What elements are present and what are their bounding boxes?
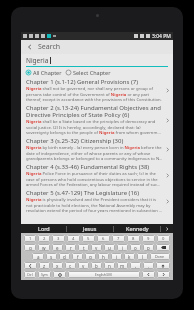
- button[interactable]: 1: [24, 235, 36, 242]
- staticText: r: [70, 245, 72, 251]
- button[interactable]: 9: [142, 235, 155, 242]
- staticText: Kennedy: [126, 225, 149, 232]
- button[interactable]: l: [137, 253, 148, 260]
- button[interactable]: b: [91, 262, 102, 269]
- button[interactable]: j: [111, 253, 122, 260]
- button[interactable]: e: [52, 244, 63, 251]
- button[interactable]: f: [72, 253, 83, 260]
- button[interactable]: v: [78, 262, 89, 269]
- button[interactable]: w: [38, 244, 50, 251]
- button[interactable]: [142, 271, 155, 278]
- button[interactable]: g: [85, 253, 96, 260]
- button[interactable]: 8: [127, 235, 140, 242]
- button[interactable]: t: [78, 244, 89, 251]
- other: Open chapter: [163, 145, 171, 153]
- button[interactable]: p: [143, 244, 154, 251]
- button[interactable]: [24, 262, 37, 269]
- staticText: .: [148, 263, 150, 269]
- staticText: g: [89, 254, 92, 260]
- staticText: 1: [29, 236, 32, 242]
- button[interactable]: q: [24, 244, 36, 251]
- button[interactable]: r: [65, 244, 76, 251]
- button[interactable]: z: [39, 262, 50, 269]
- other: Open chapter: [163, 197, 171, 205]
- staticText: Chapter 4 (s.33-46) Fundamental Rights (…: [26, 163, 150, 171]
- button[interactable]: Lord: [21, 224, 66, 233]
- button[interactable]: Kennedy: [114, 224, 160, 233]
- staticText: Done: [155, 254, 165, 259]
- button[interactable]: o: [130, 244, 141, 251]
- staticText: e: [56, 245, 59, 251]
- button[interactable]: i: [117, 244, 128, 251]
- button[interactable]: Chapter 4 (s.33-46) Fundamental Rights (…: [26, 162, 171, 188]
- button[interactable]: 6: [97, 235, 110, 242]
- staticText: English(UK): [95, 273, 113, 277]
- button[interactable]: [53, 271, 66, 278]
- other: Open chapter: [163, 171, 171, 179]
- staticText: a: [37, 254, 40, 260]
- button[interactable]: Jesus: [67, 224, 113, 233]
- staticText: c: [69, 263, 72, 269]
- button[interactable]: Back: [25, 42, 35, 52]
- button[interactable]: Chapter 2 (s.13-24) Fundamental Objectiv…: [26, 103, 171, 136]
- button[interactable]: s: [46, 253, 57, 260]
- button[interactable]: More suggestions: [161, 224, 173, 233]
- button[interactable]: [156, 244, 170, 251]
- button[interactable]: m: [117, 262, 128, 269]
- staticText: z: [43, 263, 46, 269]
- button[interactable]: x: [52, 262, 63, 269]
- button[interactable]: English(UK): [68, 271, 140, 278]
- button[interactable]: [156, 262, 170, 269]
- button[interactable]: 3: [52, 235, 65, 242]
- staticText: ,: [135, 263, 137, 269]
- button[interactable]: All Chapter: [26, 69, 62, 76]
- button[interactable]: Chapter 5 (s.47-129) The Legislature (16…: [26, 188, 171, 214]
- button[interactable]: y: [91, 244, 102, 251]
- staticText: n: [108, 263, 111, 269]
- staticText: Jesus: [83, 225, 97, 232]
- staticText: Chapter 1 (s.1-12) General Provisions (7…: [26, 78, 139, 86]
- staticText: Nigeria: [26, 56, 49, 65]
- staticText: u: [108, 245, 111, 251]
- button[interactable]: 5: [82, 235, 95, 242]
- staticText: s: [50, 254, 53, 260]
- button[interactable]: Sym: [38, 271, 51, 278]
- button[interactable]: Back: [21, 40, 173, 54]
- staticText: 0: [162, 236, 165, 242]
- staticText: Chapter 2 (s.13-24) Fundamental Objectiv…: [26, 104, 163, 119]
- staticText: t: [83, 245, 85, 251]
- button[interactable]: 7: [112, 235, 125, 242]
- button[interactable]: c: [65, 262, 76, 269]
- staticText: y: [95, 245, 98, 251]
- button[interactable]: [157, 271, 170, 278]
- staticText: o: [134, 245, 137, 251]
- button[interactable]: 4: [67, 235, 80, 242]
- button[interactable]: 0: [157, 235, 170, 242]
- button[interactable]: .: [143, 262, 154, 269]
- button[interactable]: ,: [130, 262, 141, 269]
- button[interactable]: u: [104, 244, 115, 251]
- button[interactable]: Done: [150, 253, 170, 260]
- staticText: k: [128, 254, 131, 260]
- button[interactable]: Ctrl: [24, 271, 36, 278]
- button[interactable]: d: [59, 253, 70, 260]
- staticText: 6: [102, 236, 105, 242]
- staticText: j: [116, 254, 118, 260]
- staticText: q: [29, 245, 32, 251]
- button[interactable]: 2: [38, 235, 50, 242]
- button[interactable]: Chapter 1 (s.1-12) General Provisions (7…: [26, 77, 171, 103]
- staticText: l: [142, 254, 144, 260]
- staticText: 2: [43, 236, 46, 242]
- button[interactable]: Chapter 3 (s.25-32) Citizenship (30): [26, 136, 171, 162]
- staticText: v: [82, 263, 85, 269]
- button[interactable]: h: [98, 253, 109, 260]
- button[interactable]: a: [32, 253, 44, 260]
- staticText: m: [120, 263, 125, 269]
- staticText: 4: [72, 236, 75, 242]
- button[interactable]: Select Chapter: [66, 69, 111, 76]
- staticText: Nigeria is physically involved and the P…: [26, 197, 163, 213]
- button[interactable]: n: [104, 262, 115, 269]
- staticText: w: [42, 245, 46, 251]
- button[interactable]: k: [124, 253, 135, 260]
- staticText: b: [95, 263, 98, 269]
